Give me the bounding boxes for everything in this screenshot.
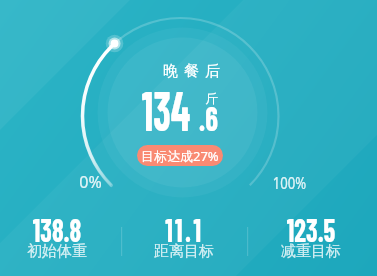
staticText: 减重目标: [281, 242, 341, 261]
staticText: 100%: [273, 172, 306, 194]
staticText: .6: [199, 97, 218, 138]
staticText: 距离目标: [154, 242, 214, 261]
staticText: 138.8: [32, 209, 82, 248]
staticText: 初始体重: [27, 242, 87, 261]
staticText: 123.5: [286, 209, 336, 248]
button[interactable]: 目标达成27%: [137, 145, 223, 166]
staticText: 晚餐后: [160, 62, 223, 81]
staticText: 目标达成27%: [141, 147, 219, 165]
staticText: 斤: [205, 91, 218, 107]
staticText: 11.1: [165, 209, 204, 248]
staticText: 0%: [79, 171, 102, 193]
staticText: 134: [141, 75, 190, 142]
